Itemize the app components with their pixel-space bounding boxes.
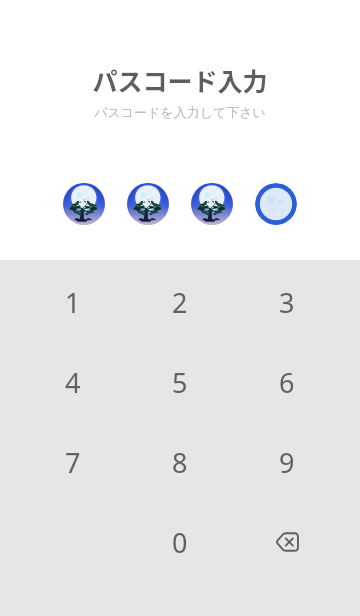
staticText: 0: [172, 524, 188, 561]
button[interactable]: 9: [233, 422, 340, 502]
button[interactable]: 0: [126, 502, 233, 582]
button[interactable]: Backspace, delete last digit: [233, 502, 340, 582]
staticText: 9: [279, 444, 295, 481]
button[interactable]: 4: [20, 342, 126, 422]
staticText: パスコード入力: [92, 62, 268, 98]
staticText: 7: [65, 444, 81, 481]
button[interactable]: 3: [233, 262, 340, 342]
staticText: 2: [172, 284, 188, 321]
staticText: 8: [172, 444, 188, 481]
staticText: 5: [172, 364, 188, 401]
button[interactable]: 1: [20, 262, 126, 342]
button[interactable]: 8: [126, 422, 233, 502]
button[interactable]: 5: [126, 342, 233, 422]
button[interactable]: 6: [233, 342, 340, 422]
staticText: 3: [279, 284, 295, 321]
staticText: パスコードを入力して下さい: [94, 104, 266, 120]
button[interactable]: 2: [126, 262, 233, 342]
staticText: 1: [65, 284, 81, 321]
staticText: 6: [279, 364, 295, 401]
button[interactable]: 7: [20, 422, 126, 502]
staticText: 4: [65, 364, 81, 401]
